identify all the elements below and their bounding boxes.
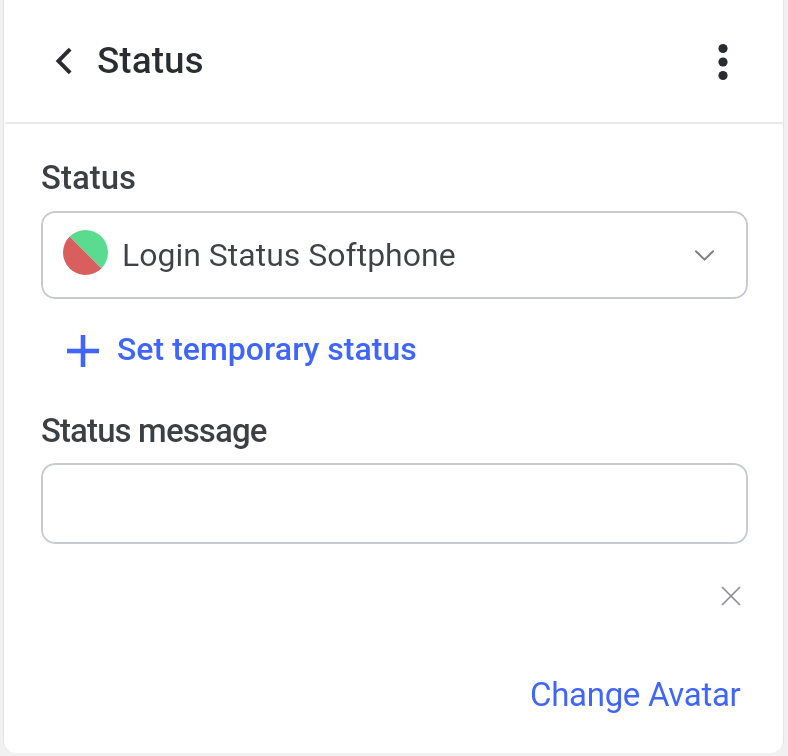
button[interactable]: Set temporary status xyxy=(60,323,417,379)
button[interactable]: More options xyxy=(699,38,747,86)
staticText: Status xyxy=(41,158,137,197)
staticText: Change Avatar xyxy=(530,675,741,714)
staticText: Login Status Softphone xyxy=(122,236,456,274)
staticText: Status message xyxy=(41,411,267,450)
button[interactable]: Clear status message xyxy=(707,572,755,620)
button[interactable]: Change Avatar xyxy=(520,667,751,722)
button[interactable] xyxy=(41,463,748,544)
button[interactable]: Back xyxy=(40,37,88,85)
button[interactable]: Login Status Softphone xyxy=(41,211,748,299)
staticText: Status xyxy=(97,39,204,82)
staticText: Set temporary status xyxy=(117,330,417,368)
